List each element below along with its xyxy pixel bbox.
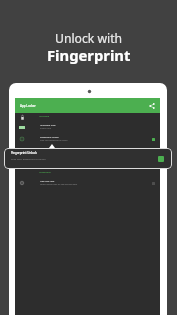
staticText: Unlocking Type xyxy=(40,124,56,127)
staticText: Hide App Icon xyxy=(40,148,55,151)
staticText: Unlock with xyxy=(55,30,123,47)
staticText: App Locker xyxy=(20,104,36,108)
button[interactable]: Share xyxy=(147,101,156,110)
staticText: Pattern Lock xyxy=(40,127,52,130)
button[interactable]: Lock Timeout xyxy=(15,157,160,169)
staticText: Show a popup alert for new installed app… xyxy=(40,183,78,186)
staticText: Scan your fingerprint to unlock xyxy=(40,139,68,142)
button[interactable]: New App Alert xyxy=(15,177,160,189)
staticText: Fingerprint Unlock xyxy=(40,136,59,139)
staticText: Notification xyxy=(39,171,51,174)
button[interactable]: Fingerprint Unlock xyxy=(4,148,172,169)
staticText: Scan your fingerprint to unlock xyxy=(11,157,46,160)
button[interactable]: Unlocking Type xyxy=(15,121,160,133)
button[interactable]: Fingerprint Unlock xyxy=(152,138,155,141)
staticText: Unlocking xyxy=(39,115,50,118)
staticText: Fingerprint xyxy=(47,45,131,65)
button[interactable]: Enabled xyxy=(158,156,164,162)
staticText: Fingerprint Unlock xyxy=(11,151,37,155)
button[interactable]: Hide App Icon xyxy=(15,145,160,157)
button[interactable]: Fingerprint Unlock xyxy=(15,133,160,145)
staticText: New App Alert xyxy=(40,180,55,183)
